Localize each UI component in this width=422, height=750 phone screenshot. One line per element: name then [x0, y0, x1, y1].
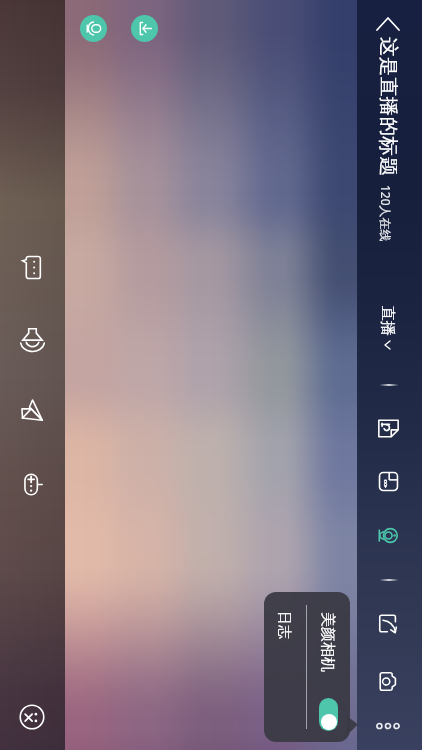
button[interactable]: Send [13, 391, 51, 429]
staticText: 日志 [275, 611, 293, 639]
button[interactable]: Microphone [13, 319, 51, 357]
button[interactable]: More [13, 465, 51, 503]
staticText: 美颜相机 [318, 612, 337, 672]
button[interactable]: Camera [369, 516, 407, 554]
button[interactable]: Exit [131, 15, 158, 42]
staticText: 120人在线 [378, 185, 394, 242]
button[interactable]: Microphone [80, 15, 107, 42]
staticText: 直播 [378, 306, 397, 336]
button[interactable]: 直播 [374, 294, 402, 360]
button[interactable]: Slides [369, 409, 407, 447]
button[interactable]: Switch camera [369, 662, 407, 700]
button[interactable]: Back [370, 6, 406, 42]
button[interactable]: Close [13, 698, 51, 736]
button[interactable]: Beauty toggle [319, 698, 338, 731]
button[interactable]: Layout [369, 462, 407, 500]
button[interactable]: Share screen [369, 604, 407, 642]
staticText: 这是直播的标题 [376, 37, 401, 177]
button[interactable]: Chat [13, 248, 51, 286]
button[interactable]: More options [370, 708, 406, 744]
